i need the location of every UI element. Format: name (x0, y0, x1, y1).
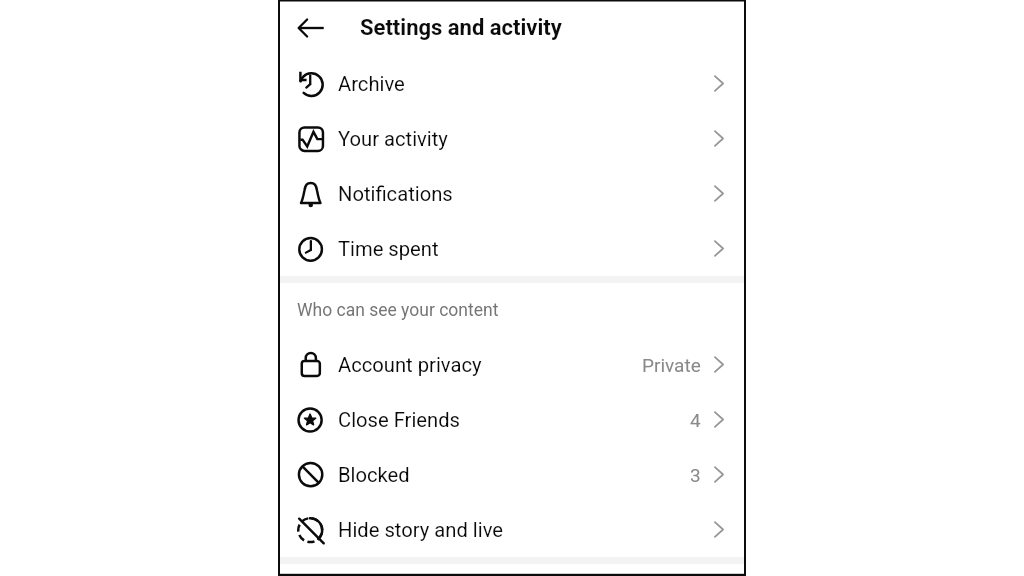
staticText: Who can see your content (297, 300, 499, 321)
button[interactable]: Notifications (280, 166, 744, 221)
button[interactable]: Hide story and live (280, 502, 744, 557)
staticText: Blocked (338, 463, 410, 487)
button[interactable]: Blocked (280, 447, 744, 502)
staticText: 3 (690, 464, 701, 486)
staticText: Private (642, 354, 701, 376)
button[interactable]: Account privacy (280, 337, 744, 392)
staticText: Notifications (338, 182, 453, 206)
staticText: Account privacy (338, 353, 482, 377)
button[interactable]: Back (280, 0, 341, 56)
staticText: Archive (338, 72, 405, 96)
staticText: Hide story and live (338, 518, 504, 542)
staticText: Your activity (338, 127, 448, 151)
button[interactable]: Close Friends (280, 392, 744, 447)
staticText: Close Friends (338, 408, 461, 432)
staticText: Settings and activity (360, 15, 562, 41)
button[interactable]: Archive (280, 56, 744, 111)
button[interactable]: Time spent (280, 221, 744, 276)
staticText: 4 (690, 409, 701, 431)
staticText: Time spent (338, 237, 439, 261)
button[interactable]: Your activity (280, 111, 744, 166)
